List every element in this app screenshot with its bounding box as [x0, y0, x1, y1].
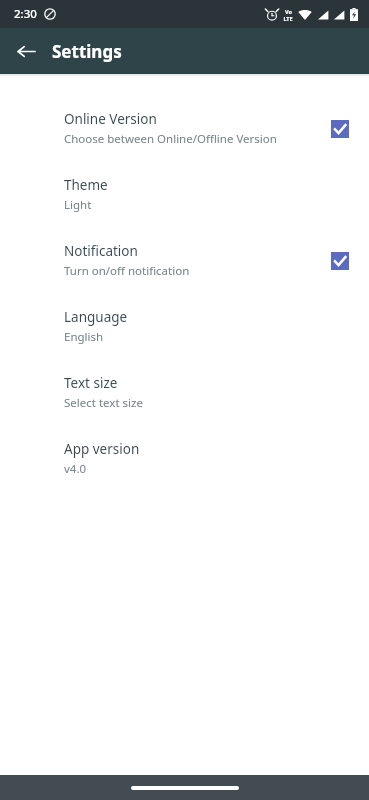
staticText: Language — [64, 308, 128, 326]
staticText: English — [64, 329, 104, 345]
staticText: Notification — [64, 242, 138, 260]
staticText: App version — [64, 440, 140, 458]
staticText: Theme — [64, 176, 108, 194]
button[interactable]: Online Version toggle — [330, 119, 349, 138]
staticText: Light — [64, 197, 92, 213]
button[interactable]: App version — [0, 425, 369, 491]
button[interactable]: Language — [0, 293, 369, 359]
button[interactable]: Notification toggle — [330, 251, 349, 270]
staticText: Turn on/off notification — [64, 263, 190, 279]
staticText: LTE — [283, 15, 293, 21]
staticText: Online Version — [64, 110, 157, 128]
staticText: Vo — [285, 8, 292, 15]
staticText: v4.0 — [64, 461, 87, 477]
staticText: 2:30 — [14, 6, 37, 22]
staticText: Choose between Online/Offline Version — [64, 131, 277, 147]
button[interactable]: Text size — [0, 359, 369, 425]
staticText: Settings — [52, 40, 122, 63]
staticText: Select text size — [64, 395, 143, 411]
staticText: Text size — [64, 374, 118, 392]
button[interactable]: Back — [8, 33, 44, 69]
button[interactable]: Notification — [0, 227, 369, 293]
button[interactable]: Online Version — [0, 95, 369, 161]
button[interactable]: Theme — [0, 161, 369, 227]
